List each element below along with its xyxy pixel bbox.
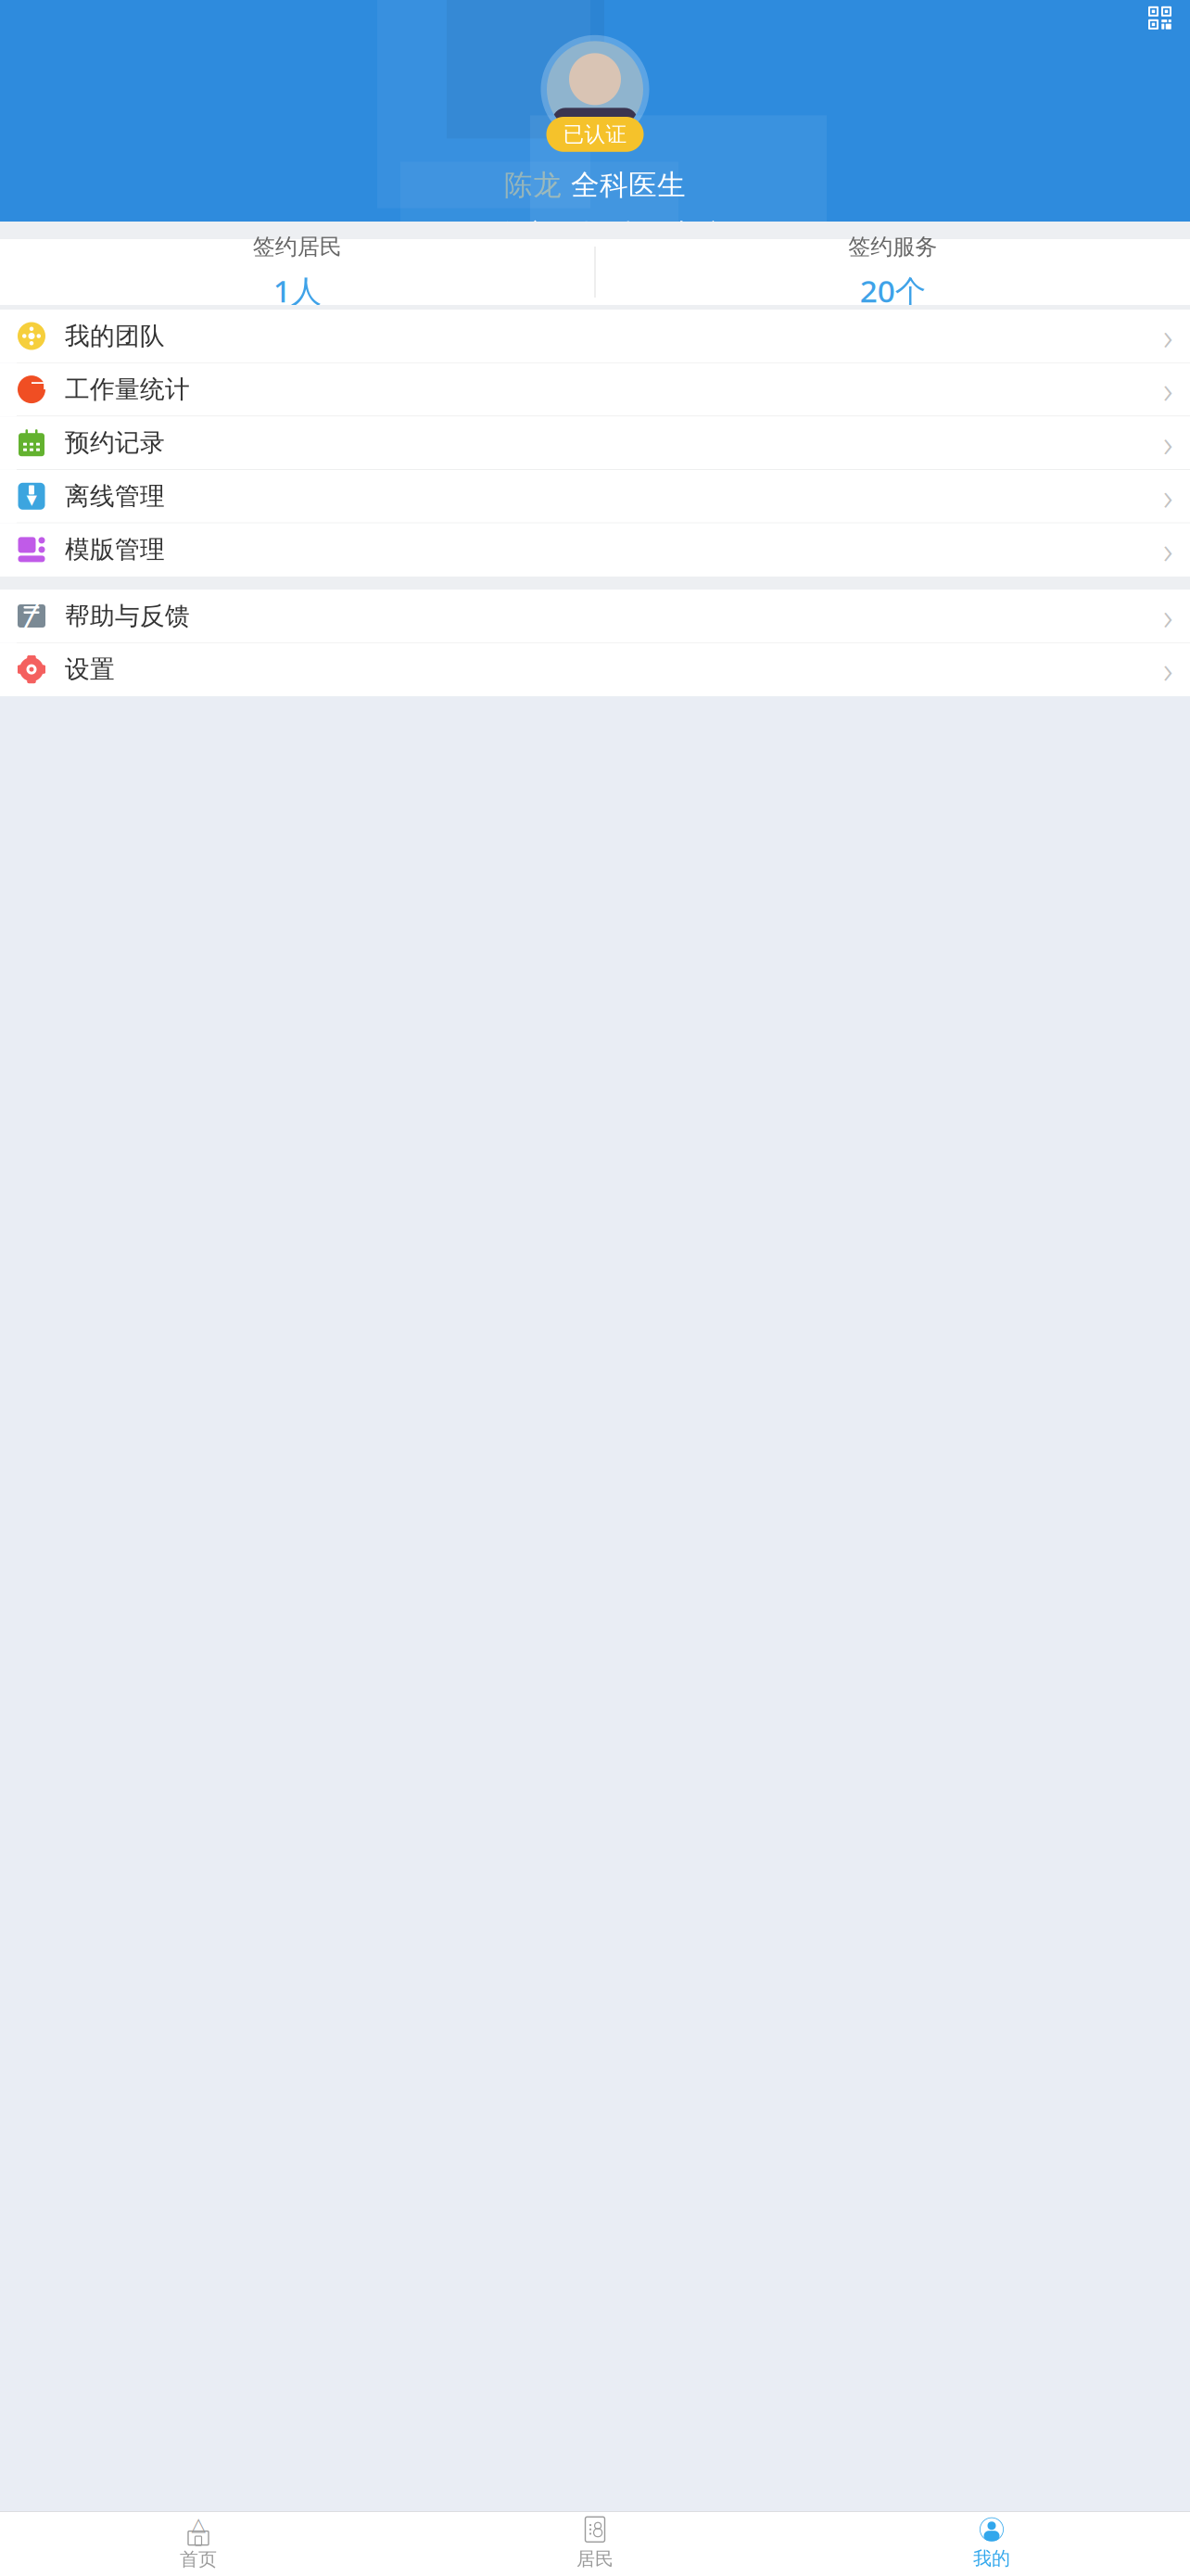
button[interactable]: 签约居民: [0, 220, 595, 324]
staticText: ›: [1163, 472, 1173, 521]
staticText: ›: [1163, 525, 1173, 574]
button[interactable]: 我的团队: [0, 310, 1190, 363]
button[interactable]: △: [0, 2509, 397, 2576]
button[interactable]: 工作量统计: [0, 363, 1190, 416]
button[interactable]: 扫一扫二维码: [1141, 0, 1179, 37]
staticText: 陈龙: [504, 168, 562, 203]
staticText: 20个: [860, 270, 926, 311]
staticText: ╱: [22, 598, 41, 634]
staticText: 1人: [273, 270, 321, 311]
staticText: ›: [1163, 591, 1173, 641]
staticText: ›: [1163, 418, 1173, 467]
button[interactable]: 签约服务: [595, 220, 1190, 324]
staticText: ▼: [26, 492, 37, 507]
button[interactable]: 模版管理: [0, 523, 1190, 577]
button[interactable]: 我的: [793, 2510, 1190, 2576]
staticText: 我的团队: [65, 321, 165, 351]
staticText: 工作量统计: [65, 374, 190, 405]
staticText: 首页: [180, 2548, 217, 2571]
staticText: 已认证: [563, 121, 627, 147]
button[interactable]: ╱: [0, 590, 1190, 643]
staticText: 如皋市丁堰镇卫生院: [466, 217, 724, 252]
staticText: ›: [1163, 365, 1173, 414]
staticText: ›: [1163, 311, 1173, 361]
staticText: 我的: [973, 2547, 1010, 2570]
staticText: 设置: [65, 654, 115, 685]
staticText: 签约服务: [848, 233, 937, 261]
staticText: 预约记录: [65, 428, 165, 458]
staticText: 模版管理: [65, 534, 165, 565]
staticText: 离线管理: [65, 481, 165, 511]
staticText: 签约居民: [253, 233, 342, 261]
button[interactable]: 预约记录: [0, 416, 1190, 470]
button[interactable]: 设置: [0, 643, 1190, 696]
staticText: 帮助与反馈: [65, 601, 190, 631]
staticText: △: [191, 2514, 205, 2535]
button[interactable]: 居民: [397, 2509, 793, 2576]
button[interactable]: ▼: [0, 470, 1190, 523]
staticText: 全科医生: [571, 168, 686, 203]
staticText: ›: [1163, 645, 1173, 694]
staticText: 居民: [576, 2547, 614, 2570]
